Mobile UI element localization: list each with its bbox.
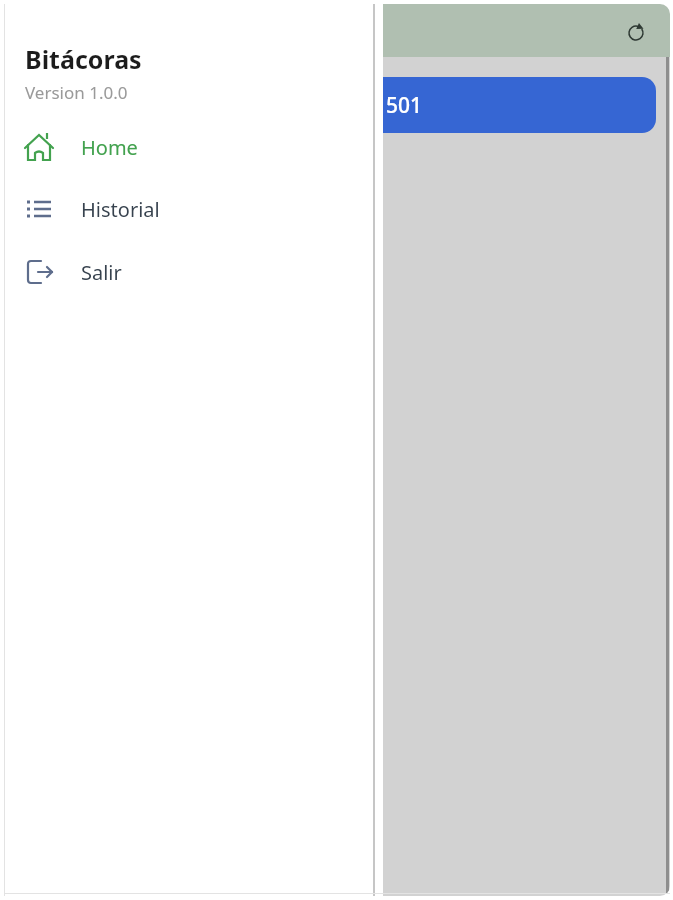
- button[interactable]: Salir: [16, 250, 356, 294]
- staticText: Historial: [81, 196, 160, 223]
- staticText: 501: [386, 91, 423, 120]
- staticText: Bitácoras: [25, 42, 142, 76]
- staticText: Salir: [81, 259, 122, 286]
- staticText: Version 1.0.0: [25, 81, 128, 104]
- button[interactable]: Historial: [16, 187, 356, 231]
- button[interactable]: Home: [16, 125, 356, 169]
- button[interactable]: [622, 19, 650, 47]
- button[interactable]: 501: [19, 77, 656, 133]
- staticText: Home: [81, 134, 138, 161]
